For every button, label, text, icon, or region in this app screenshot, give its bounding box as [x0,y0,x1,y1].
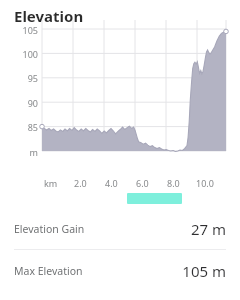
staticText: 95 [14,72,38,84]
staticText: Elevation Gain [14,222,85,236]
staticText: 85 [14,121,38,133]
button[interactable]: Elevation Gain [0,208,240,249]
staticText: 2.0 [74,177,87,189]
staticText: 100 [14,48,38,60]
staticText: 10.0 [196,177,214,189]
staticText: 27 m [190,219,226,239]
staticText: 6.0 [136,177,149,189]
staticText: Elevation [14,6,84,26]
staticText: m [14,146,38,158]
staticText: 90 [14,97,38,109]
staticText: km [44,177,58,189]
staticText: 4.0 [105,177,118,189]
staticText: 105 m [182,261,226,281]
staticText: 8.0 [167,177,180,189]
button[interactable]: Max Elevation [0,250,240,291]
staticText: 105 [14,24,38,36]
staticText: Max Elevation [14,264,83,278]
